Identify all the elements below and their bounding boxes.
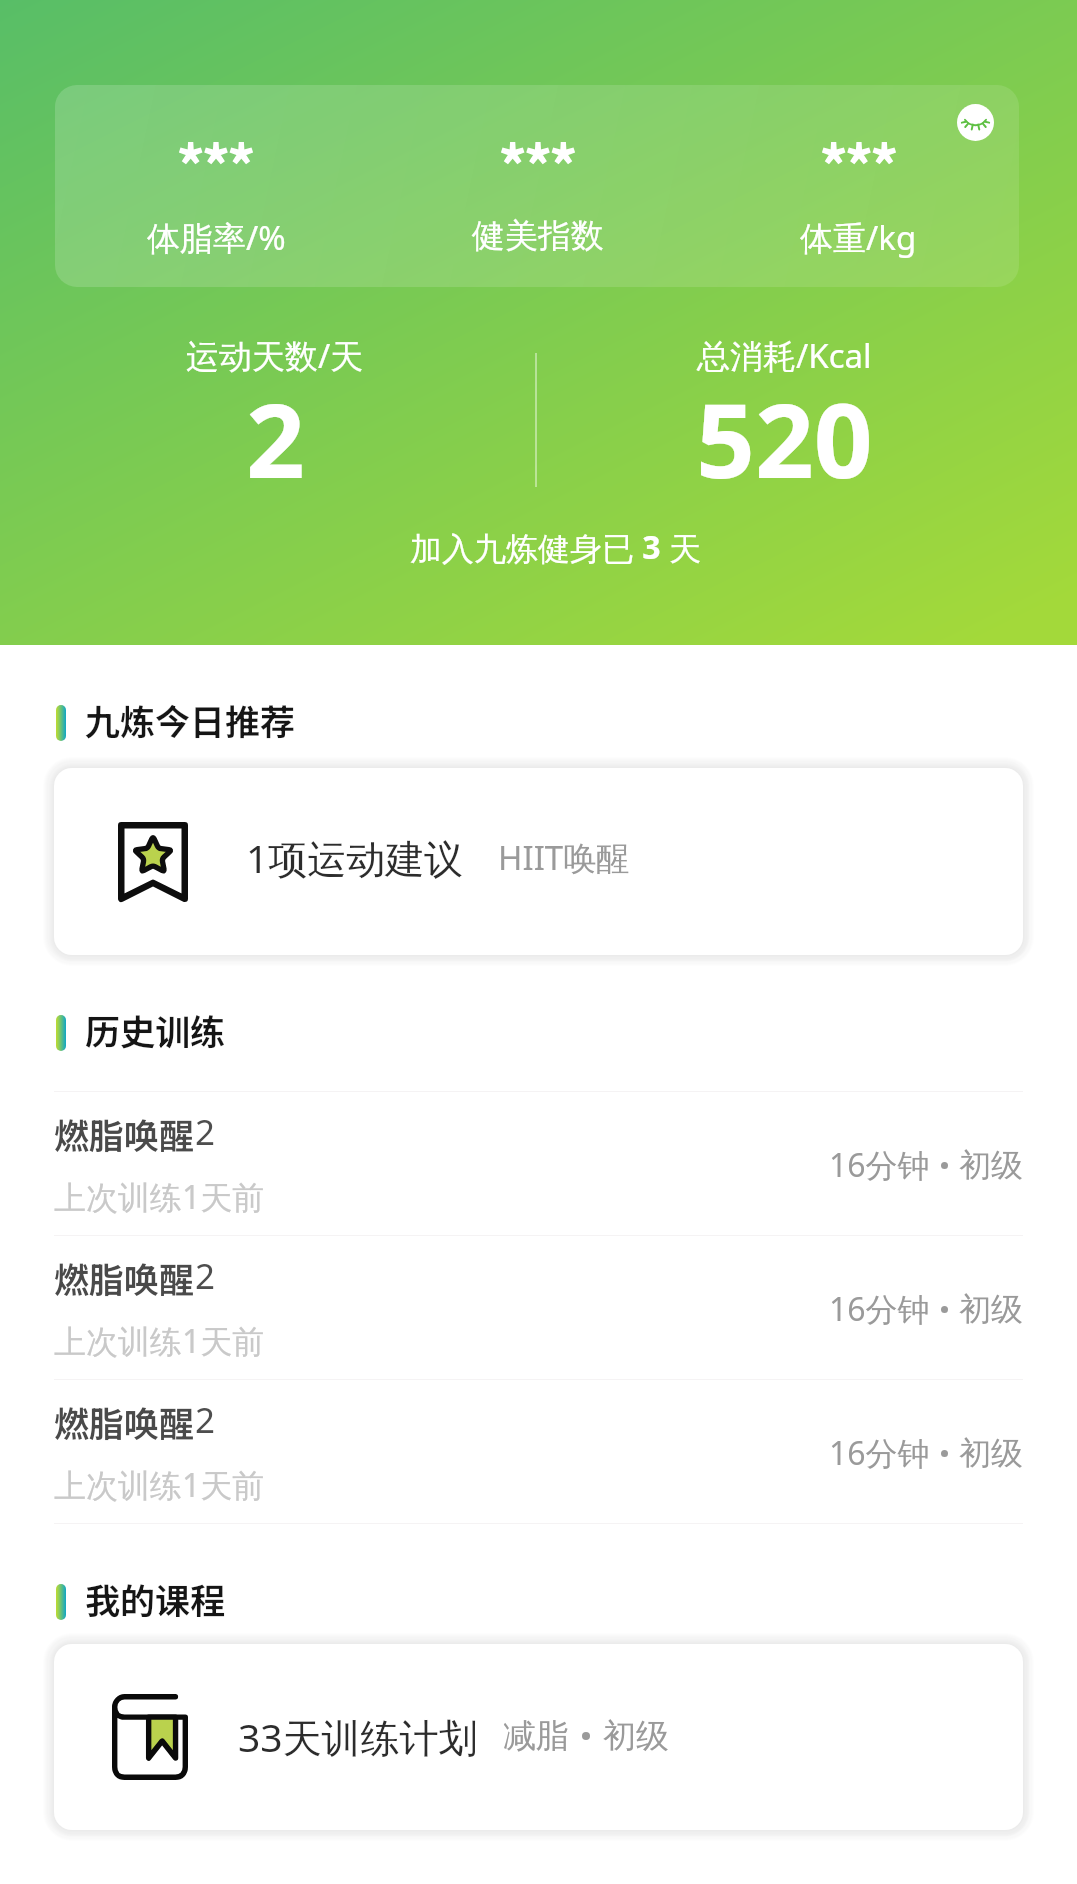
staticText: 上次训练1天前 bbox=[54, 1319, 265, 1363]
button[interactable]: Toggle visibility bbox=[957, 104, 994, 141]
staticText: 2 bbox=[195, 1396, 216, 1444]
staticText: 燃脂唤醒 bbox=[54, 1252, 195, 1303]
button[interactable]: 燃脂唤醒 bbox=[0, 1092, 1077, 1235]
staticText: 天 bbox=[669, 529, 701, 569]
staticText: 3 bbox=[634, 525, 669, 569]
staticText: 上次训练1天前 bbox=[54, 1463, 265, 1507]
staticText: 体脂率/% bbox=[147, 215, 286, 260]
staticText: 2 bbox=[246, 368, 305, 508]
button[interactable]: 33天训练计划 bbox=[54, 1644, 1023, 1830]
staticText: 上次训练1天前 bbox=[54, 1175, 265, 1219]
staticText: 1项运动建议 bbox=[246, 831, 464, 884]
staticText: 历史训练 bbox=[85, 1004, 226, 1055]
staticText: 2 bbox=[195, 1252, 216, 1300]
staticText: 燃脂唤醒 bbox=[54, 1108, 195, 1159]
staticText: 2 bbox=[195, 1108, 216, 1156]
staticText: HIIT唤醒 bbox=[498, 835, 630, 880]
staticText: 我的课程 bbox=[85, 1573, 226, 1624]
staticText: 初级 bbox=[959, 1145, 1023, 1185]
staticText: 健美指数 bbox=[472, 215, 604, 257]
staticText: 初级 bbox=[959, 1433, 1023, 1473]
staticText: 初级 bbox=[603, 1715, 669, 1757]
staticText: 减脂 bbox=[503, 1715, 569, 1757]
staticText: 16分钟 bbox=[829, 1143, 930, 1187]
button[interactable]: 1项运动建议 bbox=[54, 768, 1023, 955]
staticText: 总消耗/Kcal bbox=[697, 333, 872, 378]
staticText: 燃脂唤醒 bbox=[54, 1396, 195, 1447]
staticText: 运动天数/天 bbox=[186, 333, 364, 378]
staticText: 加入九炼健身已 bbox=[410, 529, 634, 569]
staticText: 520 bbox=[696, 368, 873, 508]
staticText: 体重/kg bbox=[800, 215, 917, 260]
button[interactable]: 燃脂唤醒 bbox=[0, 1380, 1077, 1523]
staticText: 初级 bbox=[959, 1289, 1023, 1329]
staticText: 九炼今日推荐 bbox=[85, 694, 296, 745]
staticText: 16分钟 bbox=[829, 1287, 930, 1331]
button[interactable]: 燃脂唤醒 bbox=[0, 1236, 1077, 1379]
staticText: 16分钟 bbox=[829, 1431, 930, 1475]
staticText: 33天训练计划 bbox=[238, 1710, 478, 1763]
